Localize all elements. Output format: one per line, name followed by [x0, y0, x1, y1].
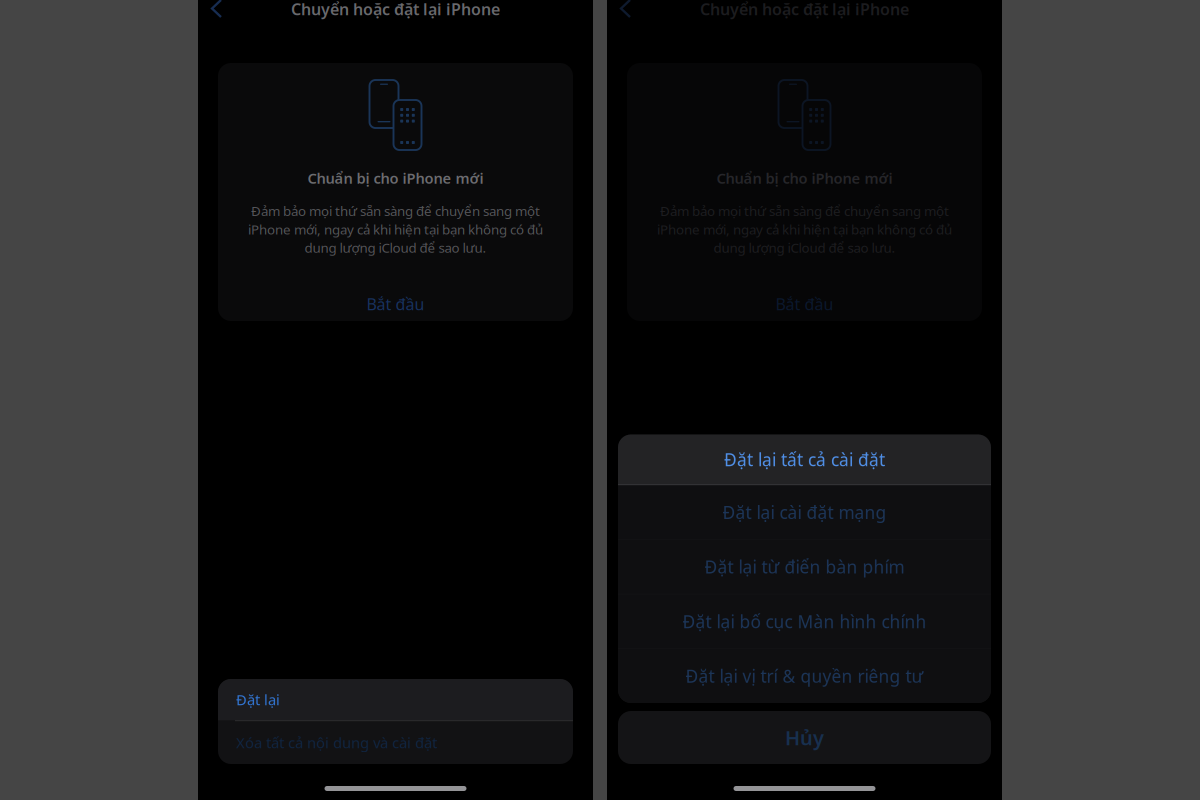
button[interactable]: Xóa tất cả nội dung và cài đặt	[218, 721, 573, 764]
staticText: Chuẩn bị cho iPhone mới	[307, 168, 483, 188]
staticText: Chuẩn bị cho iPhone mới	[716, 168, 892, 188]
staticText: Đặt lại từ điển bàn phím	[704, 555, 904, 578]
button[interactable]: Đặt lại tất cả cài đặt	[618, 434, 991, 484]
staticText: Hủy	[785, 724, 824, 751]
staticText: Đặt lại tất cả cài đặt	[724, 448, 885, 471]
button[interactable]: Back	[203, 0, 230, 23]
button[interactable]: Bắt đầu	[218, 290, 573, 318]
button[interactable]: Đặt lại vị trí & quyền riêng tư	[618, 649, 991, 703]
button[interactable]: Bắt đầu	[627, 290, 982, 318]
staticText: Đảm bảo mọi thứ sẵn sàng để chuyển sang …	[251, 202, 540, 220]
staticText: Chuyển hoặc đặt lại iPhone	[700, 0, 909, 20]
button[interactable]: Đặt lại từ điển bàn phím	[618, 540, 991, 594]
staticText: Chuyển hoặc đặt lại iPhone	[291, 0, 500, 20]
staticText: Bắt đầu	[366, 293, 424, 315]
button[interactable]: Đặt lại bố cục Màn hình chính	[618, 594, 991, 648]
staticText: iPhone mới, ngay cả khi hiện tại bạn khô…	[657, 220, 952, 238]
staticText: Đặt lại vị trí & quyền riêng tư	[685, 664, 923, 687]
staticText: Đảm bảo mọi thứ sẵn sàng để chuyển sang …	[660, 202, 949, 220]
staticText: Đặt lại bố cục Màn hình chính	[682, 610, 926, 633]
staticText: iPhone mới, ngay cả khi hiện tại bạn khô…	[248, 220, 543, 238]
staticText: Xóa tất cả nội dung và cài đặt	[236, 733, 437, 752]
staticText: Bắt đầu	[775, 293, 833, 315]
staticText: Đặt lại cài đặt mạng	[722, 501, 886, 524]
button[interactable]: Hủy	[618, 711, 991, 764]
staticText: dung lượng iCloud để sao lưu.	[304, 239, 486, 256]
staticText: dung lượng iCloud để sao lưu.	[713, 239, 895, 256]
button[interactable]: Đặt lại	[218, 679, 573, 720]
staticText: Đặt lại	[236, 690, 280, 709]
button[interactable]: Back	[612, 0, 639, 23]
button[interactable]: Đặt lại cài đặt mạng	[618, 485, 991, 539]
